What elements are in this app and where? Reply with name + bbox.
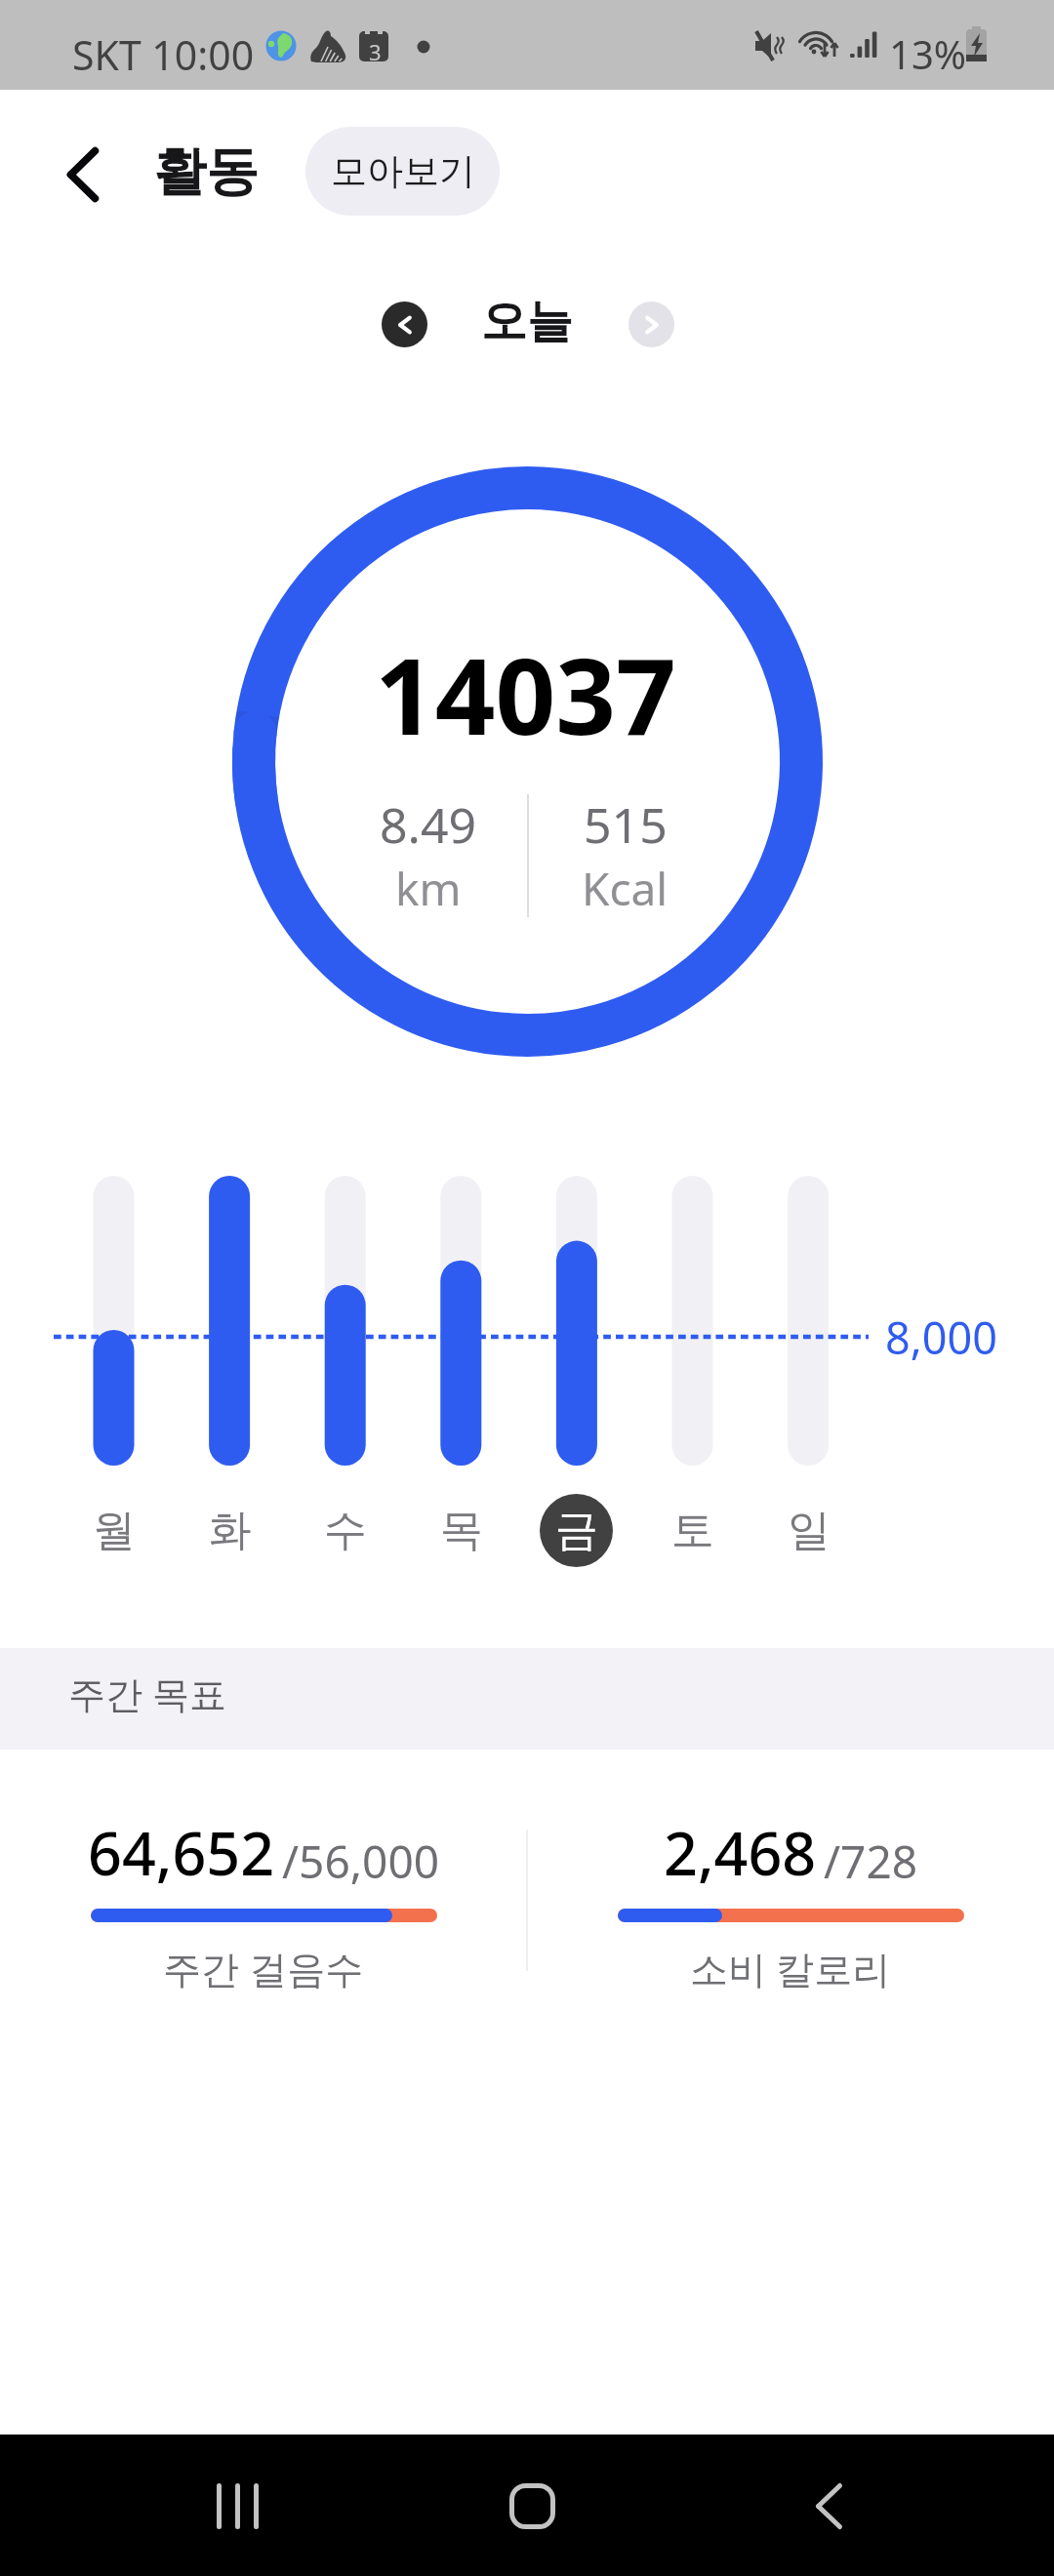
staticText: 8,000 xyxy=(885,1308,998,1367)
staticText: 활동 xyxy=(153,139,259,205)
staticText: /728 xyxy=(824,1831,918,1892)
button[interactable]: 금 xyxy=(540,1494,613,1567)
staticText: 2,468 xyxy=(664,1812,817,1893)
staticText: 일 xyxy=(788,1504,831,1557)
button[interactable]: Home xyxy=(478,2452,586,2559)
button[interactable]: 목 xyxy=(425,1494,498,1567)
staticText: 주간 걸음수 xyxy=(163,1942,364,1993)
staticText: 515 xyxy=(584,791,668,858)
staticText: 소비 칼로리 xyxy=(690,1942,891,1993)
staticText: 오늘 xyxy=(481,293,573,350)
button[interactable]: 일 xyxy=(772,1494,845,1567)
button[interactable]: 화 xyxy=(193,1494,266,1567)
button[interactable]: Back xyxy=(30,122,136,227)
staticText: km xyxy=(395,858,462,919)
staticText: 금 xyxy=(555,1504,598,1557)
staticText: 3 xyxy=(369,37,382,66)
button[interactable]: 수 xyxy=(308,1494,382,1567)
button[interactable]: Recent apps xyxy=(183,2452,291,2559)
button[interactable]: Next day xyxy=(628,302,674,347)
staticText: 수 xyxy=(324,1504,367,1557)
staticText: /56,000 xyxy=(282,1831,439,1892)
button[interactable]: 토 xyxy=(656,1494,729,1567)
staticText: 64,652 xyxy=(88,1812,275,1893)
staticText: 월 xyxy=(93,1504,136,1557)
staticText: 13% xyxy=(889,27,966,80)
button[interactable]: Back xyxy=(775,2452,882,2559)
button[interactable]: Today's steps: 14037 xyxy=(232,466,823,1057)
staticText: SKT 10:00 xyxy=(72,27,255,82)
staticText: 14037 xyxy=(375,623,676,766)
staticText: Kcal xyxy=(582,858,669,919)
button[interactable]: Previous day xyxy=(382,302,427,347)
staticText: 토 xyxy=(671,1504,714,1557)
button[interactable]: 월 xyxy=(77,1494,150,1567)
button[interactable]: 모아보기 xyxy=(305,127,500,216)
staticText: 8.49 xyxy=(380,791,477,858)
staticText: 주간 목표 xyxy=(68,1668,226,1718)
staticText: 목 xyxy=(440,1504,483,1557)
staticText: 모아보기 xyxy=(331,148,475,194)
button[interactable]: 2,468 xyxy=(527,1812,1054,1993)
staticText: 화 xyxy=(209,1504,252,1557)
button[interactable]: 64,652 xyxy=(0,1812,527,1993)
